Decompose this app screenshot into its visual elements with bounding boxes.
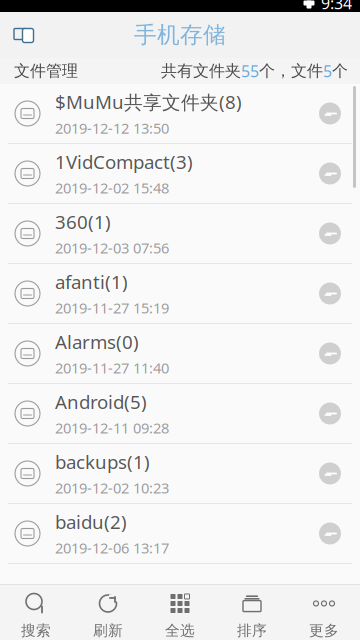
staticText: backups(1)	[55, 449, 150, 474]
button[interactable]: 排序	[216, 585, 288, 640]
staticText: 共有文件夹	[161, 61, 241, 81]
staticText: 9:34	[321, 0, 352, 14]
staticText: 个，文件	[259, 61, 323, 81]
staticText: 2019-11-27 15:19	[55, 298, 169, 318]
staticText: 更多	[309, 621, 339, 639]
staticText: 个	[332, 61, 348, 81]
button[interactable]: afanti(1)	[0, 264, 360, 324]
staticText: 5	[323, 60, 332, 82]
button[interactable]: baidu(2)	[0, 504, 360, 564]
staticText: 全选	[165, 621, 195, 639]
staticText: Android(5)	[55, 389, 147, 414]
staticText: afanti(1)	[55, 269, 128, 294]
button[interactable]: 更多	[288, 585, 360, 640]
button[interactable]: 搜索	[0, 585, 72, 640]
staticText: 1VidCompact(3)	[55, 149, 193, 174]
staticText: 2019-12-06 13:17	[55, 538, 169, 558]
staticText: 2019-12-02 15:48	[55, 178, 169, 198]
staticText: 2019-11-27 11:40	[55, 358, 169, 378]
button[interactable]: 刷新	[72, 585, 144, 640]
button[interactable]: 全选	[144, 585, 216, 640]
button[interactable]: Android(5)	[0, 384, 360, 444]
button[interactable]: $MuMu共享文件夹(8)	[0, 84, 360, 144]
button[interactable]: backups(1)	[0, 444, 360, 504]
button[interactable]: 切换视图	[0, 12, 48, 58]
staticText: 搜索	[21, 621, 51, 639]
staticText: 2019-12-11 09:28	[55, 418, 169, 438]
button[interactable]: 360(1)	[0, 204, 360, 264]
staticText: 2019-12-02 10:23	[55, 478, 169, 498]
button[interactable]: Alarms(0)	[0, 324, 360, 384]
staticText: Alarms(0)	[55, 329, 139, 354]
staticText: 排序	[237, 621, 267, 639]
staticText: $MuMu共享文件夹(8)	[55, 89, 242, 114]
button[interactable]: 1VidCompact(3)	[0, 144, 360, 204]
staticText: baidu(2)	[55, 509, 127, 534]
staticText: 55	[241, 60, 259, 82]
staticText: 手机存储	[134, 21, 226, 49]
staticText: 2019-12-03 07:56	[55, 238, 169, 258]
staticText: 2019-12-12 13:50	[55, 118, 169, 138]
staticText: 文件管理	[14, 61, 78, 81]
staticText: 刷新	[93, 621, 123, 639]
staticText: 360(1)	[55, 209, 111, 234]
